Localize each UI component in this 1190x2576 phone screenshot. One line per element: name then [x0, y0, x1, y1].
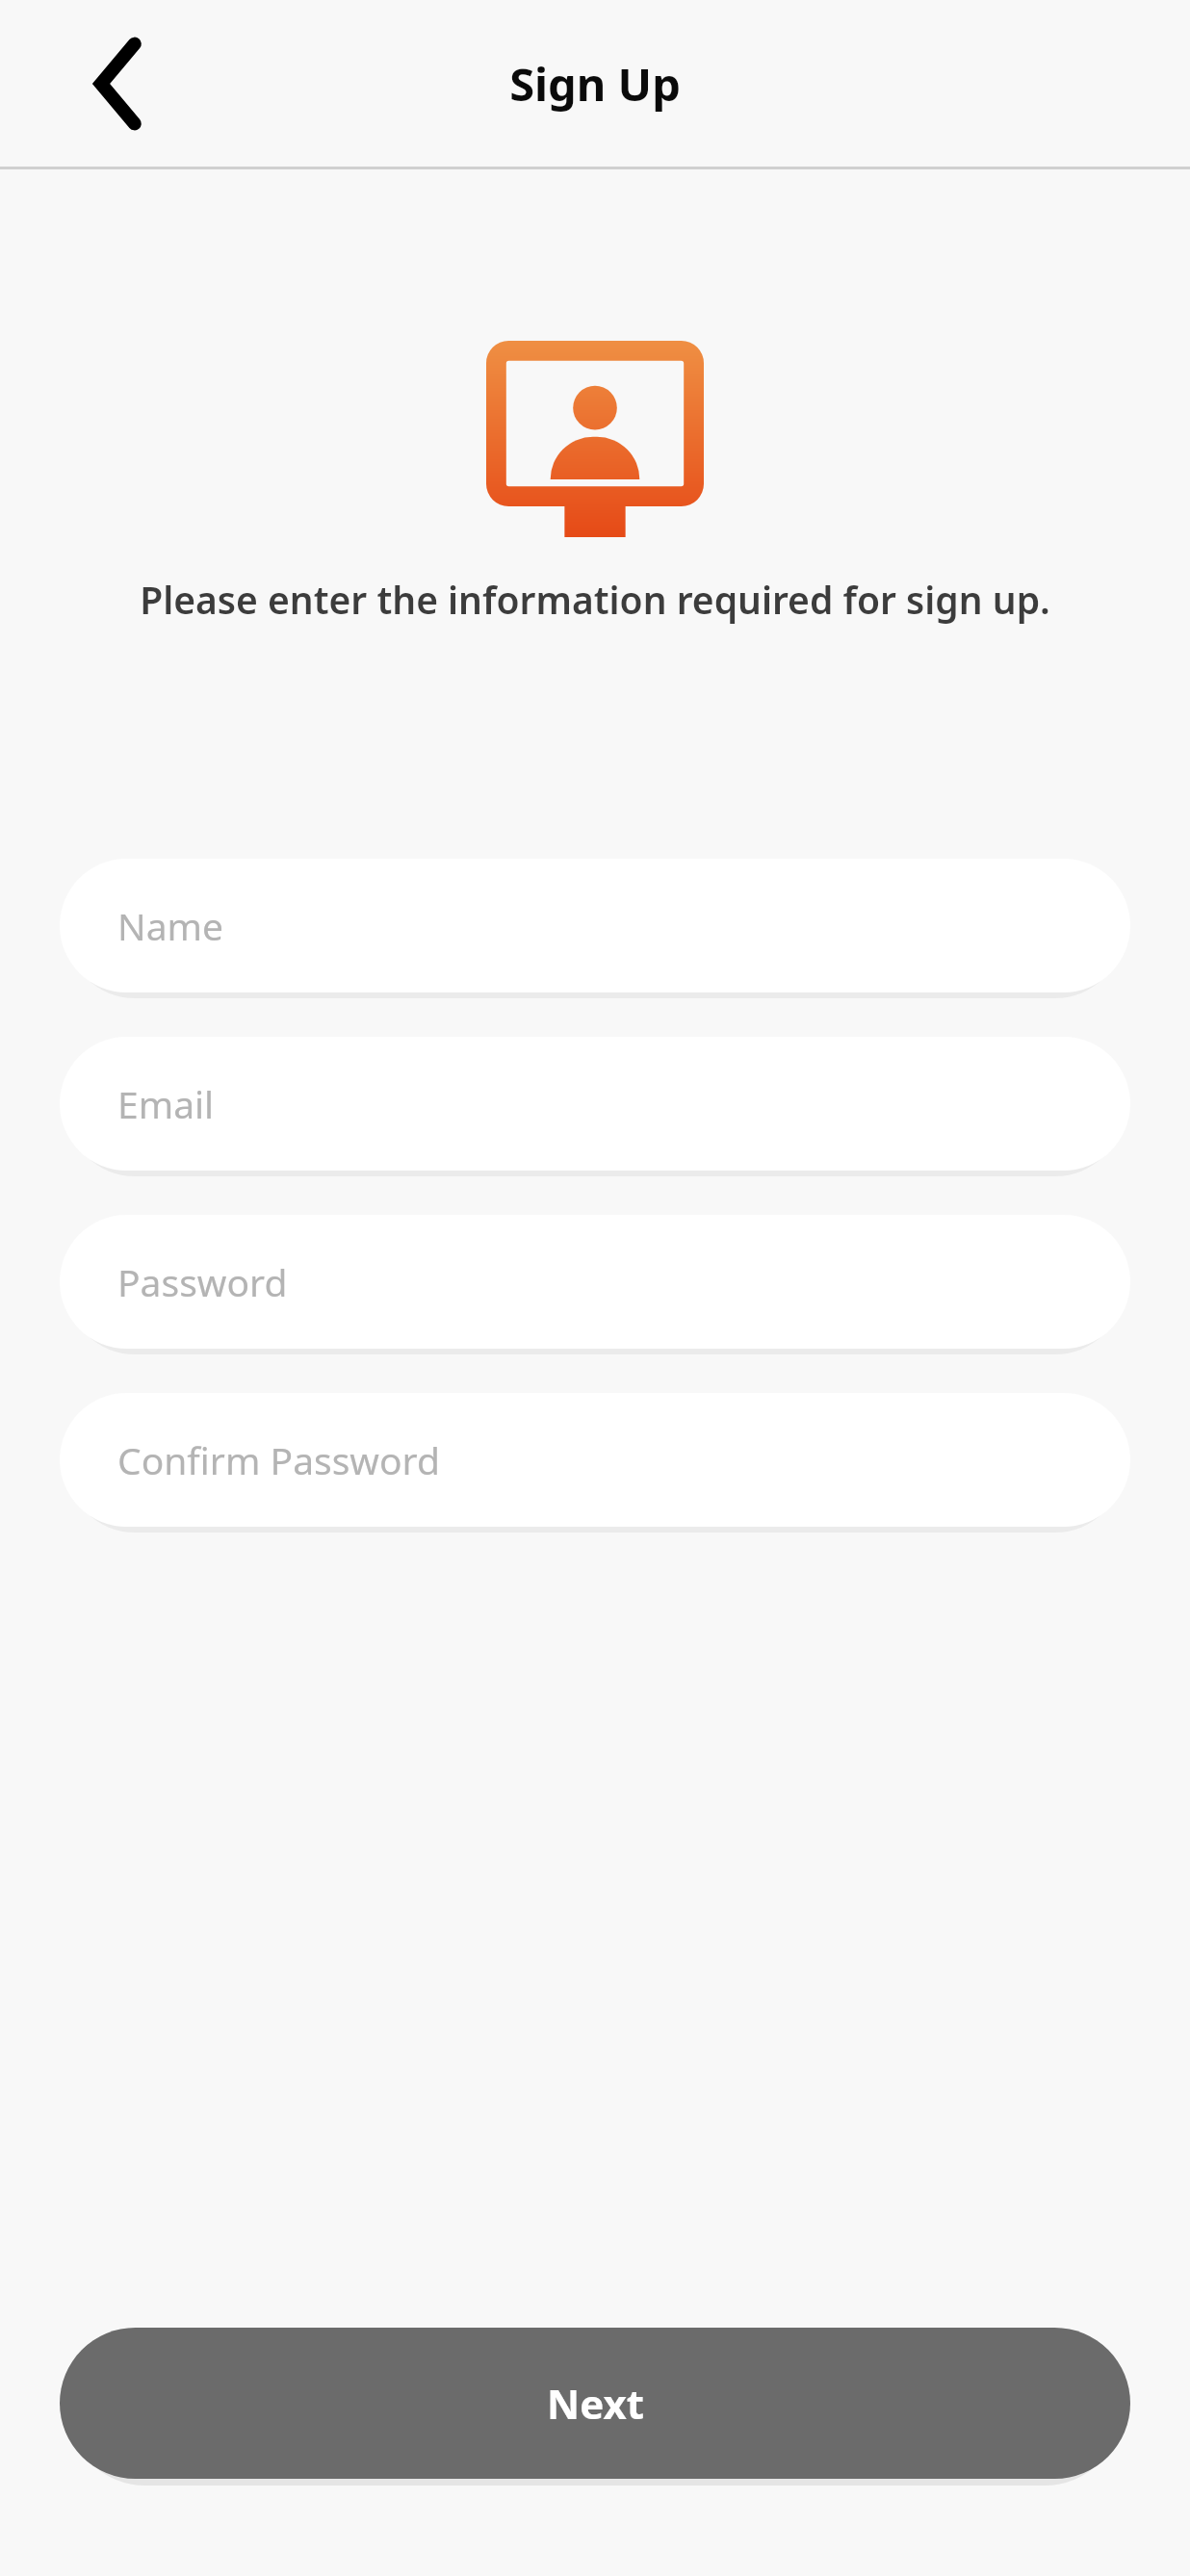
staticText: Password — [117, 1256, 288, 1307]
button[interactable]: Email — [60, 1037, 1130, 1171]
staticText: Confirm Password — [117, 1434, 440, 1485]
button[interactable]: Password — [60, 1215, 1130, 1349]
button[interactable]: Name — [60, 859, 1130, 992]
button[interactable]: Next — [60, 2328, 1130, 2479]
staticText: Sign Up — [509, 53, 681, 115]
staticText: Please enter the information required fo… — [39, 574, 1151, 625]
button[interactable]: Back — [60, 25, 177, 142]
staticText: Name — [117, 900, 223, 951]
button[interactable]: Confirm Password — [60, 1393, 1130, 1527]
staticText: Email — [117, 1078, 215, 1129]
staticText: Next — [547, 2376, 644, 2431]
